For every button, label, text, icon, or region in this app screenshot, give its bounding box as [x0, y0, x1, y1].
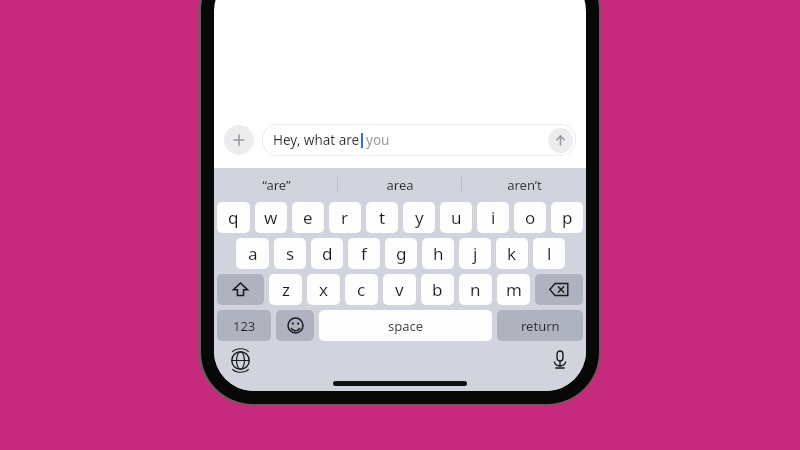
button[interactable]: Backspace: [535, 274, 583, 305]
staticText: d: [322, 242, 333, 265]
staticText: aren’t: [507, 176, 542, 194]
staticText: you: [366, 131, 390, 149]
button[interactable]: r: [329, 202, 361, 233]
staticText: a: [248, 242, 258, 265]
staticText: h: [433, 242, 444, 265]
staticText: f: [361, 242, 367, 265]
button[interactable]: h: [422, 238, 454, 269]
button[interactable]: Dictate: [547, 347, 573, 373]
button[interactable]: aren’t: [462, 168, 586, 202]
staticText: v: [395, 278, 404, 301]
button[interactable]: t: [366, 202, 398, 233]
staticText: i: [491, 206, 496, 229]
button[interactable]: x: [307, 274, 340, 305]
button[interactable]: Change keyboard language: [227, 347, 253, 373]
staticText: b: [432, 278, 443, 301]
button[interactable]: j: [459, 238, 491, 269]
button[interactable]: Add attachment: [224, 125, 254, 155]
button[interactable]: c: [345, 274, 378, 305]
staticText: 123: [233, 317, 256, 335]
button[interactable]: space: [319, 310, 492, 341]
button[interactable]: z: [269, 274, 302, 305]
staticText: w: [264, 206, 278, 229]
button[interactable]: s: [274, 238, 306, 269]
staticText: z: [282, 278, 290, 301]
staticText: q: [228, 206, 239, 229]
button[interactable]: q: [217, 202, 250, 233]
button[interactable]: o: [514, 202, 546, 233]
staticText: return: [521, 317, 560, 335]
button[interactable]: d: [311, 238, 343, 269]
staticText: area: [386, 176, 414, 194]
button[interactable]: p: [551, 202, 583, 233]
staticText: p: [562, 206, 573, 229]
staticText: j: [473, 242, 478, 265]
button[interactable]: f: [348, 238, 380, 269]
button[interactable]: y: [403, 202, 435, 233]
button[interactable]: Emoji: [276, 310, 314, 341]
button[interactable]: g: [385, 238, 417, 269]
staticText: x: [319, 278, 328, 301]
button[interactable]: Hey, what are: [262, 124, 576, 156]
staticText: s: [286, 242, 295, 265]
staticText: m: [506, 278, 522, 301]
button[interactable]: Send: [548, 128, 573, 153]
staticText: c: [357, 278, 366, 301]
button[interactable]: a: [236, 238, 269, 269]
staticText: g: [396, 242, 407, 265]
staticText: e: [303, 206, 313, 229]
button[interactable]: return: [497, 310, 583, 341]
button[interactable]: area: [338, 168, 462, 202]
staticText: u: [451, 206, 462, 229]
staticText: Hey, what are: [273, 131, 360, 149]
staticText: k: [507, 242, 517, 265]
staticText: “are”: [262, 176, 291, 194]
staticText: n: [470, 278, 481, 301]
button[interactable]: 123: [217, 310, 271, 341]
staticText: t: [379, 206, 386, 229]
button[interactable]: k: [496, 238, 528, 269]
button[interactable]: v: [383, 274, 416, 305]
button[interactable]: l: [533, 238, 565, 269]
staticText: space: [388, 317, 424, 335]
staticText: y: [415, 206, 424, 229]
button[interactable]: e: [292, 202, 324, 233]
button[interactable]: b: [421, 274, 454, 305]
button[interactable]: u: [440, 202, 472, 233]
staticText: o: [525, 206, 536, 229]
button[interactable]: n: [459, 274, 492, 305]
staticText: l: [547, 242, 552, 265]
button[interactable]: “are”: [214, 168, 338, 202]
button[interactable]: w: [255, 202, 287, 233]
button[interactable]: i: [477, 202, 509, 233]
staticText: r: [341, 206, 349, 229]
button[interactable]: Shift: [217, 274, 264, 305]
button[interactable]: m: [497, 274, 530, 305]
